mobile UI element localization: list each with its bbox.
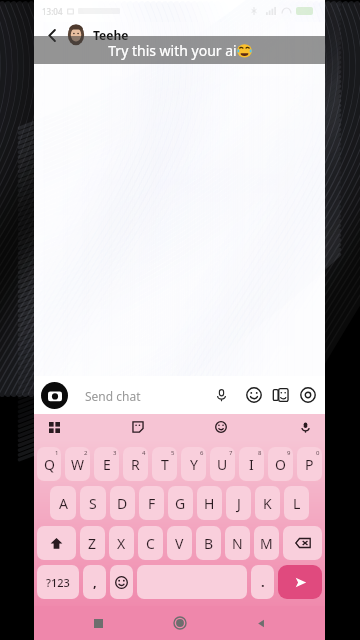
button[interactable]: M (254, 526, 279, 560)
staticText: I (249, 455, 254, 474)
button[interactable]: Apps (44, 417, 64, 437)
button[interactable]: H (197, 486, 222, 520)
button[interactable]: Backspace (283, 526, 322, 560)
staticText: F (148, 494, 156, 513)
button[interactable]: C (138, 526, 163, 560)
button[interactable]: Q (37, 447, 61, 481)
staticText: ?123 (46, 575, 70, 590)
button[interactable]: Send (278, 565, 322, 599)
button[interactable]: K (255, 486, 280, 520)
button[interactable]: Back (244, 606, 278, 640)
staticText: N (232, 534, 243, 553)
staticText: E (103, 455, 111, 474)
button[interactable]: Comma (83, 565, 106, 599)
staticText: L (293, 494, 301, 513)
staticText: 5 (171, 449, 175, 457)
button[interactable]: Emoji (211, 417, 231, 437)
button[interactable]: E (94, 447, 119, 481)
staticText: 6 (200, 449, 204, 457)
staticText: C (146, 534, 155, 553)
button[interactable]: F (139, 486, 164, 520)
button[interactable]: Z (80, 526, 105, 560)
staticText: S (89, 494, 97, 513)
button[interactable]: Shift (37, 526, 76, 560)
button[interactable]: R (123, 447, 148, 481)
staticText: 3 (113, 449, 117, 457)
button[interactable]: X (109, 526, 134, 560)
button[interactable]: P (297, 447, 322, 481)
staticText: 7 (229, 449, 233, 457)
staticText: O (275, 455, 286, 474)
button[interactable]: Send chat (75, 382, 238, 409)
button[interactable]: Symbols (37, 565, 79, 599)
button[interactable]: G (168, 486, 193, 520)
staticText: H (204, 494, 215, 513)
button[interactable]: B (196, 526, 221, 560)
button[interactable]: V (167, 526, 192, 560)
button[interactable]: Home (163, 606, 197, 640)
staticText: . (261, 573, 265, 591)
button[interactable] (65, 24, 87, 46)
button[interactable]: U (210, 447, 235, 481)
button[interactable]: Teehe (93, 27, 129, 43)
button[interactable]: N (225, 526, 250, 560)
button[interactable]: O (268, 447, 293, 481)
staticText: 4 (142, 449, 146, 457)
button[interactable]: Period (251, 565, 274, 599)
staticText: R (131, 455, 140, 474)
staticText: M (260, 534, 273, 553)
button[interactable]: Emoji (244, 385, 264, 405)
staticText: 13:04 (42, 6, 63, 17)
staticText: Try this with your ai (108, 41, 237, 60)
staticText: B (204, 534, 214, 553)
staticText: 9 (287, 449, 291, 457)
button[interactable]: J (226, 486, 251, 520)
button[interactable]: L (284, 486, 309, 520)
staticText: D (117, 494, 128, 513)
button[interactable]: Voice input (295, 417, 315, 437)
staticText: X (117, 534, 126, 553)
button[interactable]: Stickers (271, 385, 291, 405)
staticText: Z (88, 534, 97, 553)
button[interactable]: Emoji key (110, 565, 133, 599)
button[interactable]: Back (42, 25, 62, 45)
staticText: P (305, 455, 314, 474)
button[interactable]: W (65, 447, 90, 481)
button[interactable]: Space (137, 565, 247, 599)
button[interactable]: I (239, 447, 264, 481)
button[interactable]: Camera (41, 382, 68, 409)
staticText: J (237, 494, 241, 513)
button[interactable]: A (50, 486, 76, 520)
button[interactable]: S (80, 486, 106, 520)
button[interactable]: Recent apps (81, 606, 115, 640)
staticText: T (161, 455, 169, 474)
button[interactable]: T (152, 447, 177, 481)
staticText: Q (44, 455, 55, 474)
staticText: K (263, 494, 272, 513)
staticText: Y (190, 455, 198, 474)
button[interactable]: GIF sticker (128, 417, 148, 437)
staticText: 0 (316, 449, 320, 457)
staticText: Send chat (85, 388, 141, 404)
staticText: A (59, 494, 68, 513)
button[interactable]: D (110, 486, 135, 520)
staticText: 8 (258, 449, 262, 457)
staticText: V (175, 534, 184, 553)
staticText: 2 (84, 449, 88, 457)
staticText: W (71, 455, 85, 474)
button[interactable]: Map (298, 385, 318, 405)
button[interactable]: Y (181, 447, 206, 481)
staticText: 1 (55, 449, 59, 457)
staticText: , (93, 573, 97, 591)
staticText: U (217, 455, 228, 474)
staticText: G (175, 494, 186, 513)
